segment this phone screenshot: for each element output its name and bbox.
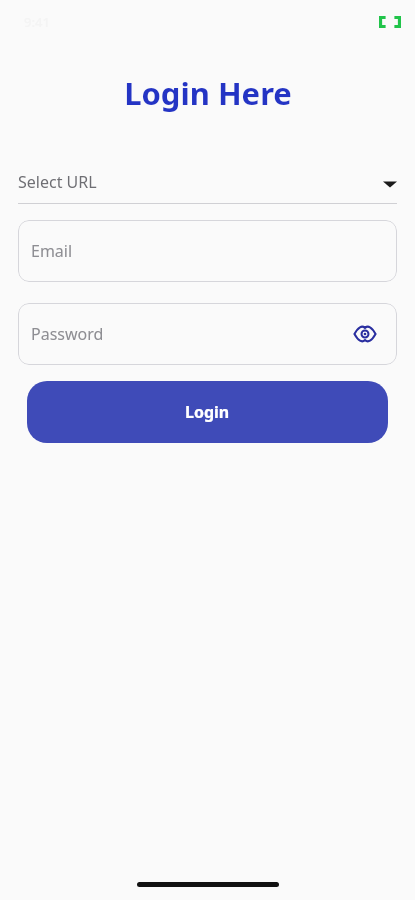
staticText: Login [185, 401, 230, 423]
staticText: Email [31, 240, 380, 262]
staticText: Select URL [18, 171, 383, 193]
button[interactable]: Show password [350, 319, 380, 349]
button[interactable]: Email [18, 220, 397, 282]
button[interactable]: Password [18, 303, 397, 365]
button[interactable]: Login [27, 381, 388, 443]
staticText: Login Here [124, 72, 292, 114]
staticText: Password [31, 323, 350, 345]
button[interactable]: Select URL [18, 161, 397, 204]
